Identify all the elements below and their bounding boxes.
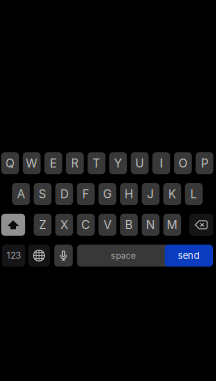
button[interactable]: R [66, 152, 84, 174]
button[interactable]: G [98, 183, 116, 205]
staticText: 123 [7, 250, 21, 261]
staticText: N [146, 218, 155, 232]
staticText: I [160, 156, 163, 170]
staticText: C [81, 218, 90, 232]
button[interactable]: S [34, 183, 51, 205]
button[interactable]: Y [109, 152, 127, 174]
button[interactable]: V [98, 214, 116, 236]
button[interactable]: Delete [189, 214, 213, 236]
staticText: F [82, 187, 89, 201]
button[interactable]: Next keyboard [28, 245, 50, 267]
button[interactable]: H [120, 183, 138, 205]
button[interactable]: W [23, 152, 41, 174]
button[interactable]: Z [34, 214, 51, 236]
staticText: H [124, 187, 133, 201]
staticText: M [167, 218, 178, 232]
staticText: Y [114, 156, 122, 170]
staticText: X [60, 218, 68, 232]
button[interactable]: P [196, 152, 213, 174]
staticText: U [135, 156, 144, 170]
button[interactable]: T [88, 152, 105, 174]
staticText: S [39, 187, 47, 201]
staticText: D [60, 187, 68, 201]
staticText: V [103, 218, 111, 232]
staticText: Q [6, 156, 15, 170]
staticText: send [178, 250, 200, 261]
staticText: O [178, 156, 187, 170]
button[interactable]: send [165, 245, 213, 267]
button[interactable]: O [174, 152, 192, 174]
button[interactable]: 123 [2, 245, 25, 267]
button[interactable]: J [142, 183, 159, 205]
staticText: R [71, 156, 79, 170]
staticText: K [168, 187, 176, 201]
button[interactable]: D [55, 183, 73, 205]
button[interactable]: X [55, 214, 73, 236]
button[interactable]: I [152, 152, 170, 174]
staticText: Z [39, 218, 46, 232]
staticText: B [125, 218, 133, 232]
staticText: L [190, 187, 197, 201]
staticText: P [201, 156, 208, 170]
button[interactable]: M [163, 214, 181, 236]
button[interactable]: E [44, 152, 62, 174]
staticText: A [17, 187, 25, 201]
button[interactable]: B [120, 214, 138, 236]
staticText: W [26, 156, 38, 170]
button[interactable]: Dictate [54, 245, 73, 267]
button[interactable]: C [77, 214, 95, 236]
button[interactable]: space [77, 245, 169, 267]
button[interactable]: N [142, 214, 159, 236]
button[interactable]: Q [1, 152, 19, 174]
button[interactable]: A [12, 183, 30, 205]
staticText: G [103, 187, 112, 201]
staticText: J [147, 187, 154, 201]
staticText: space [111, 250, 136, 261]
button[interactable]: K [163, 183, 181, 205]
staticText: T [92, 156, 100, 170]
button[interactable]: F [77, 183, 95, 205]
staticText: E [50, 156, 57, 170]
button[interactable]: L [185, 183, 203, 205]
button[interactable]: U [131, 152, 149, 174]
button[interactable]: Shift [1, 214, 25, 236]
